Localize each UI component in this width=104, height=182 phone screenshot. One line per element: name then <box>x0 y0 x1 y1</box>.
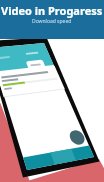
staticText: Video in Progaress <box>1 3 103 18</box>
staticText: Download speed <box>32 18 72 25</box>
